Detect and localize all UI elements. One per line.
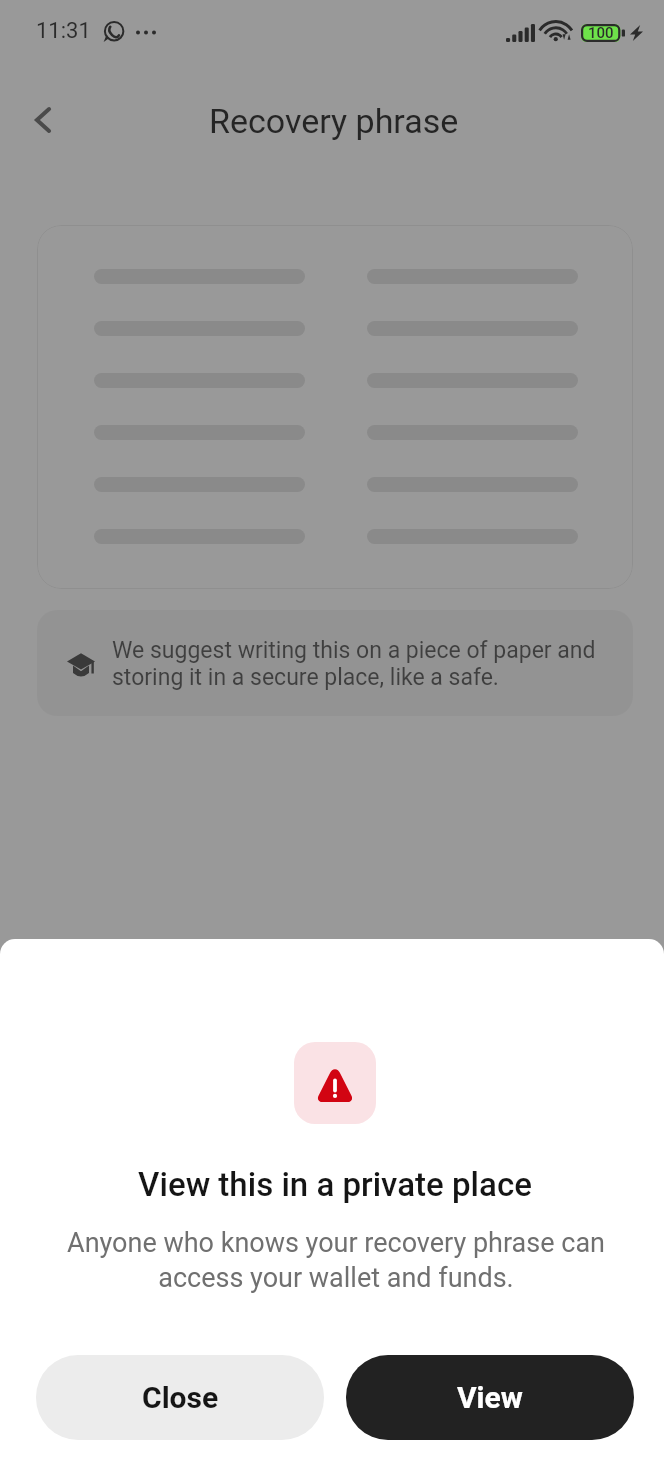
button[interactable]: View [346,1355,634,1440]
button[interactable]: Close [36,1355,324,1440]
staticText: 11:31 [36,18,91,44]
button[interactable]: Dismiss [0,0,664,939]
staticText: Recovery phrase [209,101,459,141]
staticText: We suggest writing this on a piece of pa… [112,637,604,691]
staticText: 100 [588,24,614,42]
button[interactable]: Back [17,94,69,146]
staticText: View [457,1380,523,1415]
staticText: Anyone who knows your recovery phrase ca… [56,1227,616,1293]
staticText: View this in a private place [3,1165,664,1204]
staticText: Close [142,1380,219,1415]
